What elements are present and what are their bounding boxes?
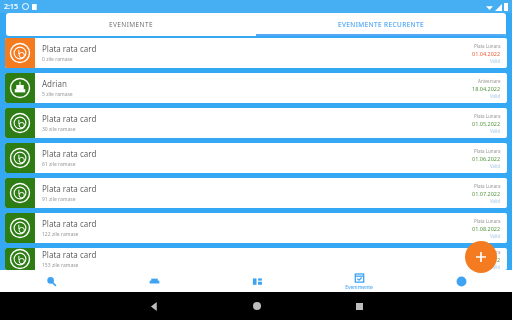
button[interactable]: Plata rata card [5,38,507,68]
staticText: Plata rata card [42,218,97,229]
button[interactable]: EVENIMENTE RECURENTE [256,13,506,36]
staticText: 01.04.2022 [472,50,501,57]
button[interactable]: Vehicles [103,270,206,292]
staticText: Plata rata card [42,43,97,54]
staticText: Adrian [42,78,67,89]
staticText: 01.06.2022 [472,155,501,162]
staticText: Evenimente [345,284,373,291]
staticText: 61 zile ramase [42,161,76,168]
button[interactable]: Plata rata card [5,213,507,243]
button[interactable]: Plata rata card [5,108,507,138]
staticText: Valid [490,163,501,169]
staticText: 91 zile ramase [42,196,76,203]
staticText: Plata Lunara [474,113,501,119]
staticText: EVENIMENTE RECURENTE [338,20,424,29]
staticText: Valid [490,93,501,99]
staticText: Plata Lunara [474,148,501,154]
staticText: Valid [490,128,501,134]
staticText: 01.05.2022 [472,120,501,127]
button[interactable]: Adrian [5,73,507,103]
button[interactable]: Cards [206,270,308,292]
button[interactable]: Search [0,270,103,292]
staticText: 0 zile ramase [42,56,73,63]
button[interactable]: Plata rata card [5,248,507,270]
staticText: 122 zile ramase [42,231,79,238]
staticText: 01.08.2022 [472,225,501,232]
button[interactable]: Plata rata card [5,143,507,173]
button[interactable]: Evenimente [308,270,410,292]
staticText: 153 zile ramase [42,262,79,269]
staticText: 30 zile ramase [42,126,76,133]
staticText: 01.09.2022 [472,256,501,263]
staticText: Plata Lunara [474,218,501,224]
staticText: Valid [490,58,501,64]
button[interactable]: Add event [465,241,497,273]
staticText: Valid [490,233,501,239]
button[interactable]: EVENIMENTE [6,13,256,36]
staticText: Plata rata card [42,183,97,194]
button[interactable]: Plata rata card [5,178,507,208]
staticText: Plata Lunara [474,43,501,49]
staticText: 01.07.2022 [472,190,501,197]
staticText: Plata rata card [42,249,97,260]
staticText: Plata Lunara [474,249,501,255]
staticText: Plata rata card [42,113,97,124]
staticText: Valid [490,264,501,270]
staticText: Plata Lunara [474,183,501,189]
staticText: Aniversare [478,78,501,84]
staticText: Valid [490,198,501,204]
staticText: EVENIMENTE [109,20,153,29]
staticText: 18.04.2022 [472,85,501,92]
staticText: 2:15 [4,2,18,12]
staticText: Plata rata card [42,148,97,159]
button[interactable]: Profile [410,270,512,292]
staticText: 5 zile ramase [42,91,73,98]
